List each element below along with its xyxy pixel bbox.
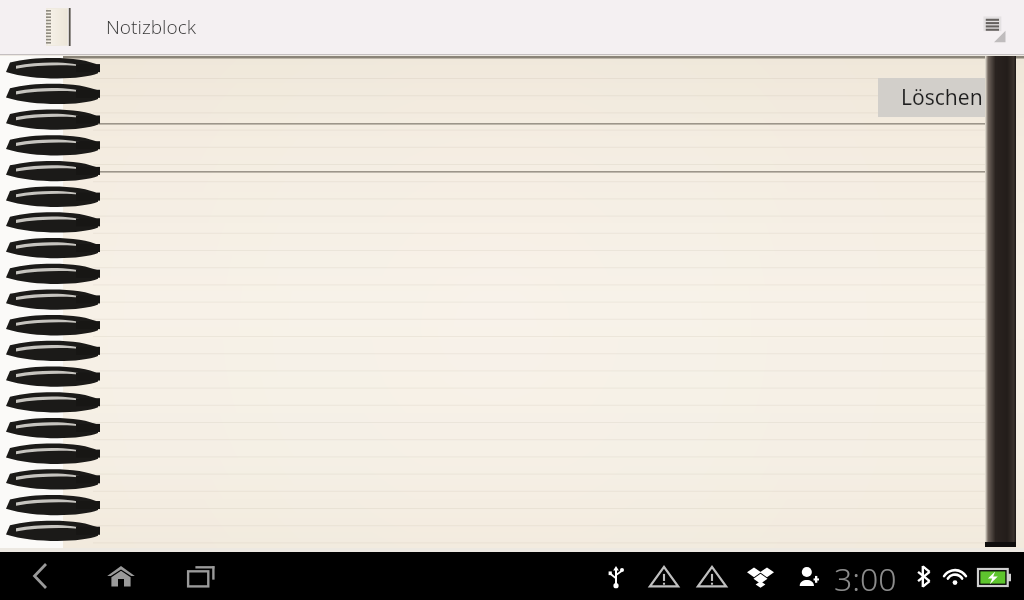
button[interactable]: Löschen <box>878 78 1005 117</box>
button[interactable]: Home <box>98 552 144 600</box>
staticText: 3:00 <box>834 557 897 600</box>
button[interactable]: Recent apps <box>178 552 224 600</box>
button[interactable]: More options <box>966 0 1022 54</box>
staticText: Löschen <box>901 83 983 112</box>
button[interactable]: Back <box>17 552 63 600</box>
staticText: Notizblock <box>106 14 197 40</box>
